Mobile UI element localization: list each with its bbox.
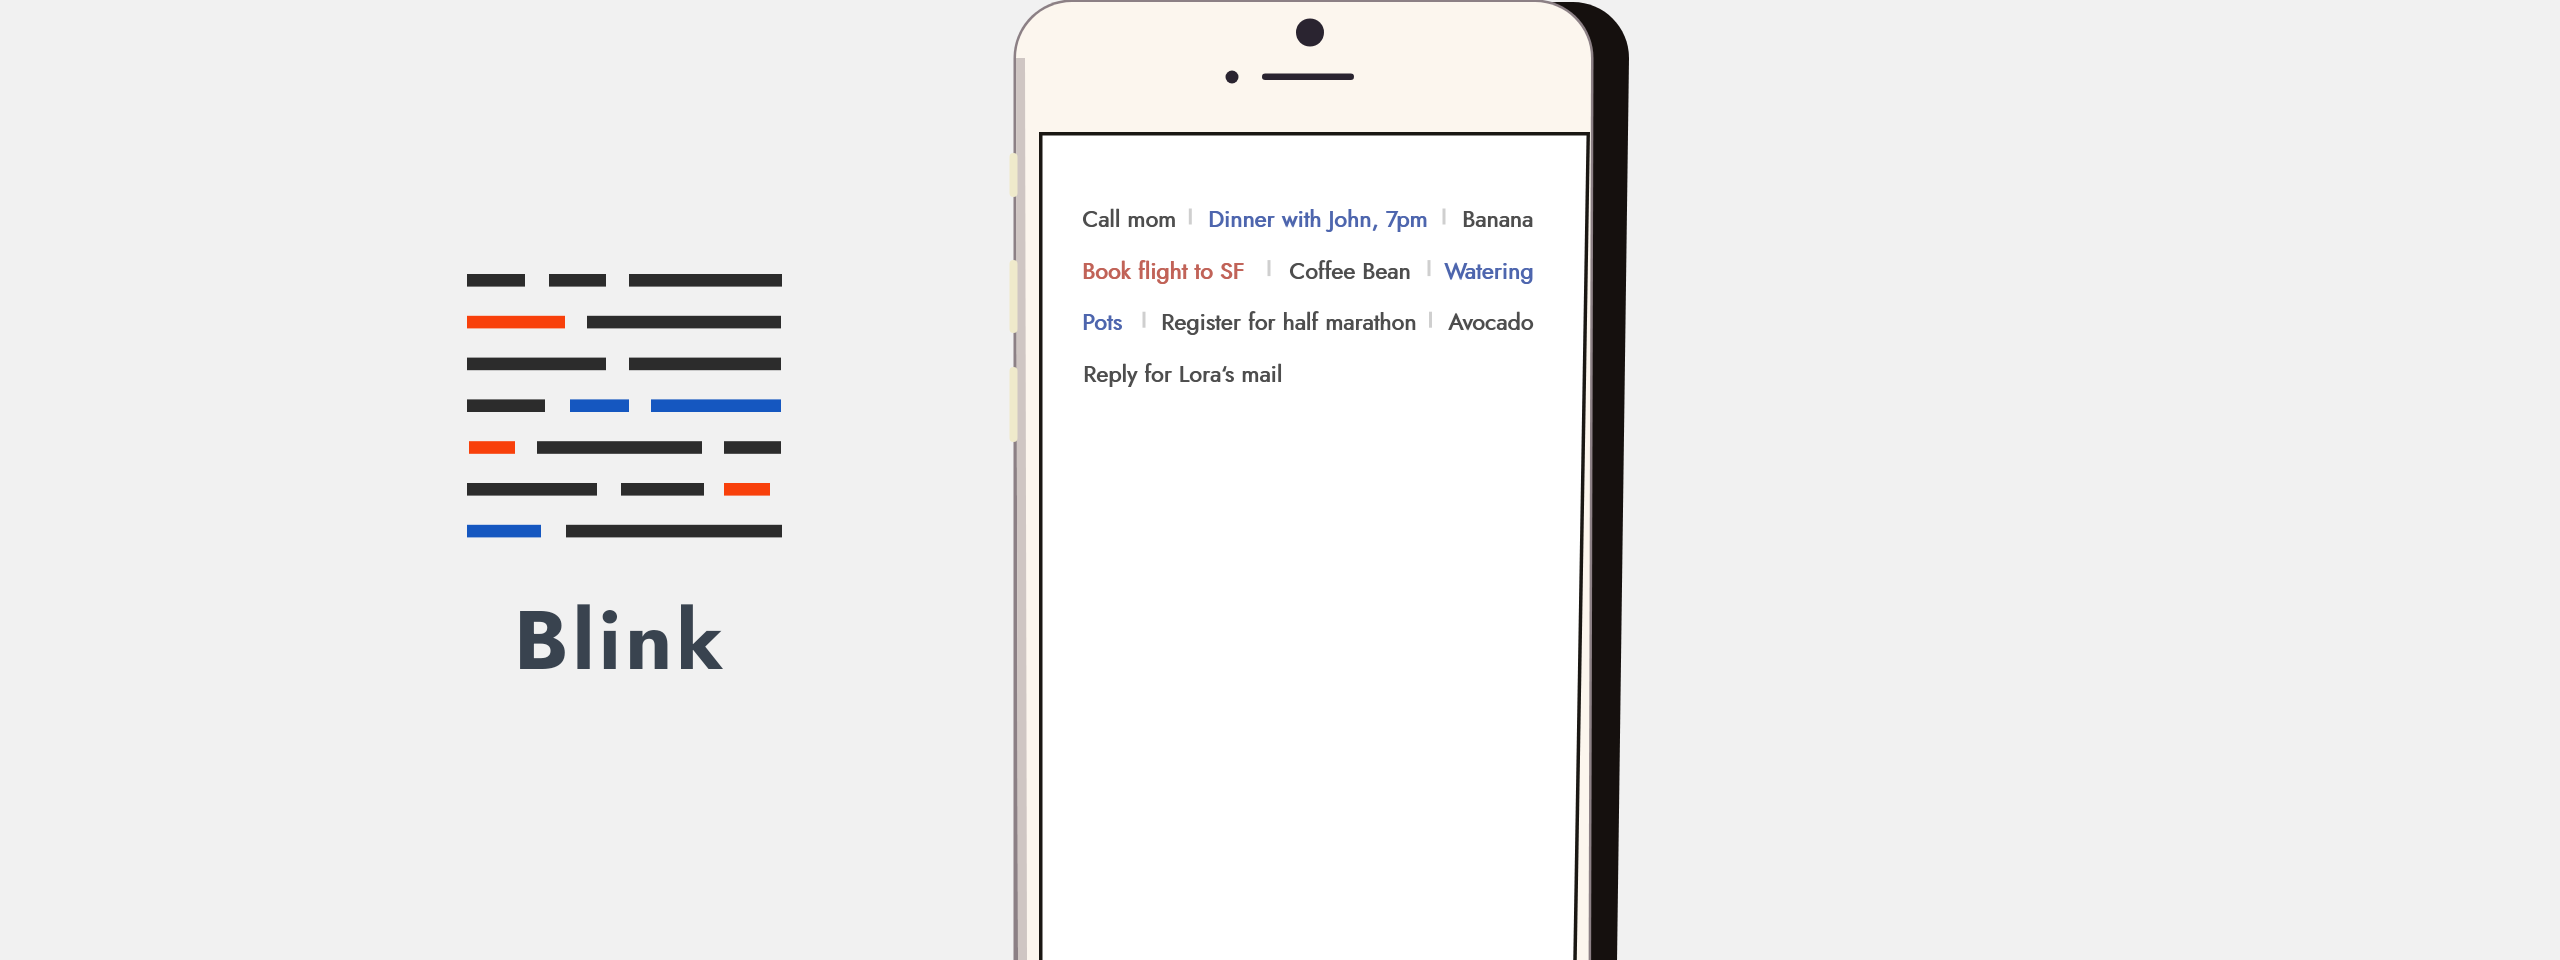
staticText: Call mom — [1082, 202, 1176, 235]
staticText: Avocado — [1449, 305, 1535, 338]
button[interactable]: Book flight to SF — [1082, 251, 1245, 284]
button[interactable]: Call mom — [1082, 199, 1176, 232]
button[interactable]: Register for half marathon — [1161, 302, 1417, 335]
staticText: Reply for Lora‘s mail — [1084, 357, 1283, 390]
button[interactable]: Avocado — [1448, 302, 1534, 335]
button[interactable]: Banana — [1462, 199, 1534, 232]
staticText: Pots — [1083, 305, 1123, 338]
button[interactable]: Dinner with John, 7pm — [1208, 199, 1428, 232]
staticText: Register for half marathon — [1161, 305, 1417, 338]
staticText: Avocado — [1448, 305, 1534, 338]
staticText: Banana — [1462, 202, 1534, 235]
staticText: Dinner with John, 7pm — [1209, 202, 1429, 235]
staticText: Watering — [1445, 254, 1535, 287]
staticText: Reply for Lora‘s mail — [1083, 357, 1282, 390]
button[interactable]: Watering — [1444, 251, 1534, 284]
button[interactable]: Reply for Lora‘s mail — [1083, 354, 1282, 387]
staticText: Book flight to SF — [1082, 254, 1245, 287]
button[interactable]: Blink — [514, 581, 728, 699]
staticText: Coffee Bean — [1290, 254, 1412, 287]
staticText: Dinner with John, 7pm — [1208, 202, 1428, 235]
staticText: Call mom — [1083, 202, 1177, 235]
button[interactable]: Pots — [1082, 302, 1122, 335]
staticText: Coffee Bean — [1289, 254, 1411, 287]
staticText: Pots — [1082, 305, 1122, 338]
staticText: Register for half marathon — [1162, 305, 1418, 338]
staticText: Watering — [1444, 254, 1534, 287]
staticText: Book flight to SF — [1083, 254, 1246, 287]
button[interactable]: Blink note-lines logo — [460, 266, 790, 546]
button[interactable]: Coffee Bean — [1289, 251, 1411, 284]
staticText: Banana — [1463, 202, 1535, 235]
